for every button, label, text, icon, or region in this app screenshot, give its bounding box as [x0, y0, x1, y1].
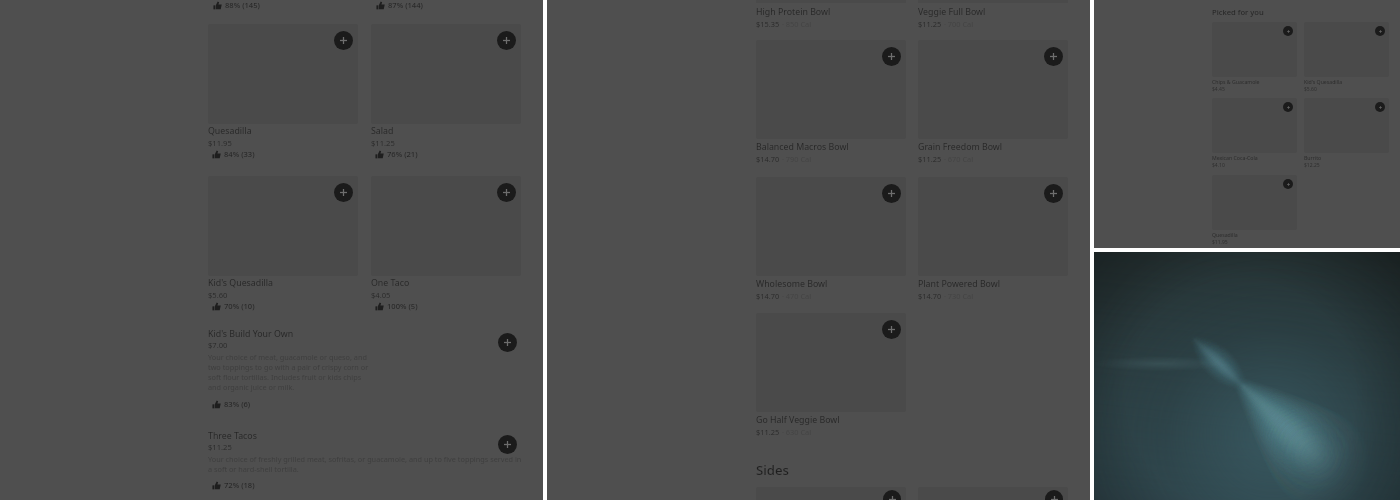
- staticText: Kid's Build Your Own: [208, 328, 294, 340]
- button[interactable]: Veggie Full Bowl: [918, 6, 1068, 29]
- button[interactable]: Add to order: [1304, 98, 1389, 169]
- button[interactable]: Add to order: [497, 183, 516, 202]
- staticText: $14.70: [756, 154, 780, 164]
- button[interactable]: Add to order: [883, 490, 901, 500]
- staticText: Chips & Guacamole: [1212, 78, 1260, 85]
- staticText: $14.70: [756, 291, 780, 301]
- staticText: 88% (145): [225, 0, 260, 10]
- staticText: Go Half Veggie Bowl: [756, 414, 840, 426]
- staticText: $4.45: [1212, 86, 1225, 93]
- staticText: Salad: [371, 125, 394, 137]
- button[interactable]: Add to order: [1044, 184, 1063, 203]
- button[interactable]: Add to order: [334, 183, 353, 202]
- staticText: $11.25: [918, 19, 942, 29]
- staticText: Picked for you: [1212, 7, 1264, 17]
- button[interactable]: Add to order: [1283, 26, 1293, 36]
- staticText: Kid's Quesadilla: [1304, 78, 1343, 85]
- staticText: 70% (10): [224, 301, 255, 311]
- staticText: $11.25: [918, 154, 942, 164]
- button[interactable]: Add to order: [1304, 22, 1389, 93]
- button[interactable]: Add to order: [918, 177, 1068, 301]
- staticText: Balanced Macros Bowl: [756, 141, 849, 153]
- staticText: $11.95: [208, 138, 232, 148]
- staticText: Quesadilla: [1212, 231, 1238, 238]
- staticText: Mexican Coca-Cola: [1212, 154, 1258, 161]
- staticText: 76% (21): [387, 149, 418, 159]
- button[interactable]: Add to order: [1212, 175, 1297, 246]
- staticText: Wholesome Bowl: [756, 278, 828, 290]
- button[interactable]: Add to order: [1044, 47, 1063, 66]
- staticText: $15.35: [756, 19, 780, 29]
- button[interactable]: Add to order: [1283, 102, 1293, 112]
- button[interactable]: Add to order: [882, 47, 901, 66]
- button[interactable]: Add to order: [918, 487, 1068, 500]
- staticText: $4.10: [1212, 162, 1225, 169]
- staticText: $5.60: [208, 290, 228, 300]
- button[interactable]: Add to order: [208, 176, 358, 311]
- staticText: Sides: [756, 461, 789, 479]
- button[interactable]: Add to order: [497, 31, 516, 50]
- button[interactable]: Add to order: [1212, 22, 1297, 93]
- staticText: $4.05: [371, 290, 391, 300]
- staticText: $11.25: [756, 427, 780, 437]
- staticText: Grain Freedom Bowl: [918, 141, 1003, 153]
- staticText: 83% (6): [224, 399, 251, 409]
- button[interactable]: Add to order: [1375, 102, 1385, 112]
- button[interactable]: Add to order: [1212, 98, 1297, 169]
- staticText: One Taco: [371, 277, 410, 289]
- staticText: High Protein Bowl: [756, 6, 831, 18]
- staticText: Veggie Full Bowl: [918, 6, 986, 18]
- button[interactable]: Add to order: [371, 176, 521, 311]
- staticText: Your choice of freshly grilled meat, sof…: [208, 454, 522, 474]
- staticText: 100% (5): [387, 301, 418, 311]
- staticText: $14.70: [918, 291, 942, 301]
- staticText: Quesadilla: [208, 125, 252, 137]
- button[interactable]: Add to order: [756, 40, 906, 164]
- button[interactable]: Kid's Build Your Own: [208, 328, 522, 426]
- staticText: $11.95: [1212, 239, 1228, 246]
- button[interactable]: Add to order: [498, 333, 517, 352]
- button[interactable]: Add to order: [882, 320, 901, 339]
- staticText: 84% (33): [224, 149, 255, 159]
- button[interactable]: Add to order: [756, 177, 906, 301]
- staticText: 72% (18): [224, 480, 255, 490]
- button[interactable]: Add to order: [1045, 490, 1063, 500]
- button[interactable]: Add to order: [334, 31, 353, 50]
- button[interactable]: Add to order: [756, 313, 906, 437]
- staticText: $11.25: [371, 138, 395, 148]
- staticText: 87% (144): [388, 0, 423, 10]
- staticText: $7.00: [208, 340, 228, 350]
- button[interactable]: Three Tacos: [208, 430, 522, 500]
- button[interactable]: Add to order: [918, 40, 1068, 164]
- button[interactable]: Add to order: [1375, 26, 1385, 36]
- staticText: Burrito: [1304, 154, 1322, 161]
- button[interactable]: Add to order: [208, 24, 358, 159]
- button[interactable]: Add to order: [498, 435, 517, 454]
- staticText: $5.60: [1304, 86, 1317, 93]
- staticText: $12.25: [1304, 162, 1320, 169]
- button[interactable]: Add to order: [882, 184, 901, 203]
- button[interactable]: Add to order: [1283, 179, 1293, 189]
- button[interactable]: High Protein Bowl: [756, 6, 906, 29]
- staticText: Plant Powered Bowl: [918, 278, 1000, 290]
- button[interactable]: Add to order: [756, 487, 906, 500]
- button[interactable]: Add to order: [371, 24, 521, 159]
- staticText: $11.25: [208, 442, 232, 452]
- staticText: Kid's Quesadilla: [208, 277, 273, 289]
- staticText: Three Tacos: [208, 430, 257, 442]
